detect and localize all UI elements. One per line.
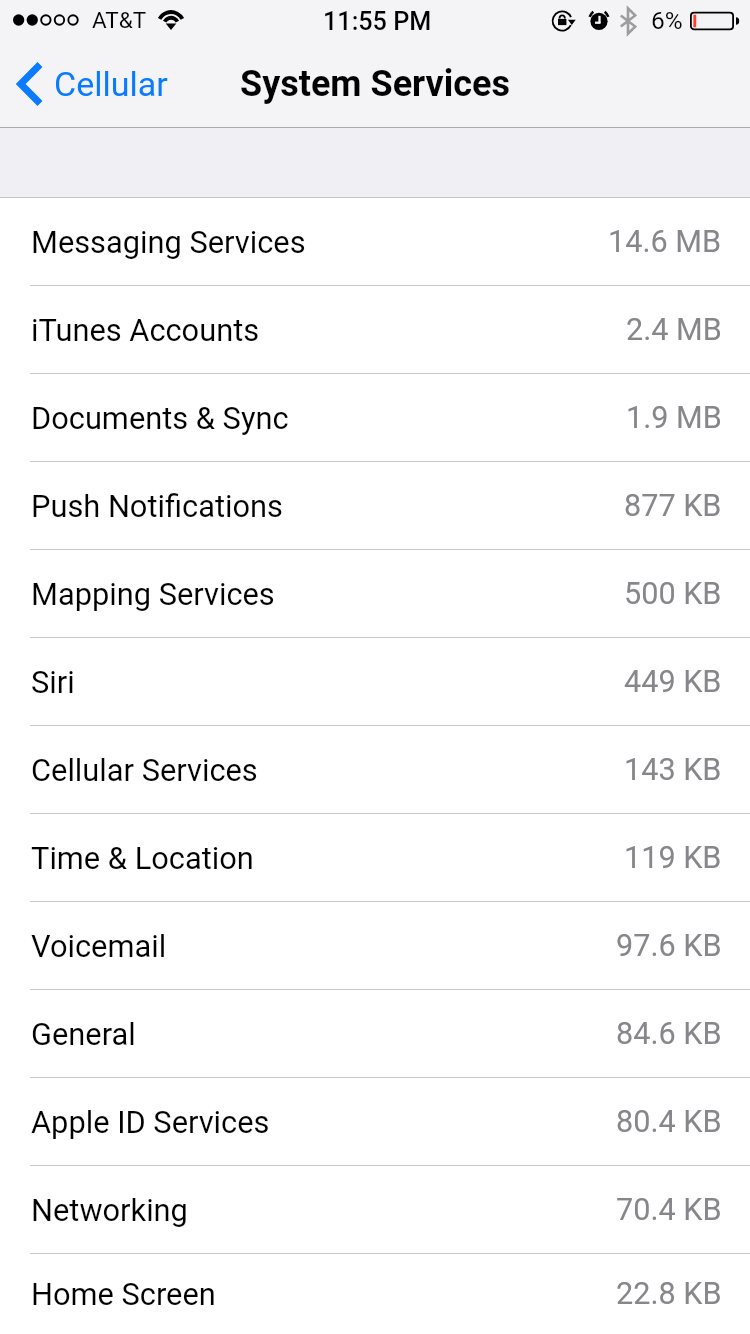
other: Battery 6 percent bbox=[690, 11, 739, 31]
staticText: 14.6 MB bbox=[608, 224, 722, 260]
button[interactable]: Back to Cellular bbox=[0, 52, 178, 116]
staticText: Mapping Services bbox=[31, 576, 275, 612]
staticText: System Services bbox=[240, 63, 511, 105]
staticText: Voicemail bbox=[31, 928, 167, 964]
staticText: Messaging Services bbox=[31, 224, 306, 260]
other: Bluetooth bbox=[620, 8, 636, 34]
staticText: 80.4 KB bbox=[616, 1104, 722, 1140]
staticText: 449 KB bbox=[624, 664, 722, 700]
button[interactable]: Cellular Services bbox=[0, 726, 750, 813]
staticText: Apple ID Services bbox=[31, 1104, 270, 1140]
staticText: 500 KB bbox=[624, 576, 722, 612]
staticText: 1.9 MB bbox=[626, 400, 722, 436]
staticText: Cellular bbox=[54, 64, 168, 104]
button[interactable]: Networking bbox=[0, 1166, 750, 1253]
staticText: Networking bbox=[31, 1192, 188, 1228]
button[interactable]: Mapping Services bbox=[0, 550, 750, 637]
staticText: General bbox=[31, 1016, 136, 1052]
staticText: 2.4 MB bbox=[626, 312, 722, 348]
other: Alarm bbox=[589, 10, 609, 31]
other: Wi-Fi bbox=[158, 10, 184, 30]
staticText: Siri bbox=[31, 664, 75, 700]
button[interactable]: Siri bbox=[0, 638, 750, 725]
other: Cellular signal bbox=[13, 12, 81, 28]
staticText: 143 KB bbox=[624, 752, 722, 788]
staticText: 119 KB bbox=[624, 840, 722, 876]
staticText: iTunes Accounts bbox=[31, 312, 260, 348]
other: Rotation lock bbox=[552, 10, 576, 32]
button[interactable]: Home Screen bbox=[0, 1254, 750, 1334]
staticText: 84.6 KB bbox=[616, 1016, 722, 1052]
staticText: Home Screen bbox=[31, 1276, 216, 1312]
staticText: 11:55 PM bbox=[323, 7, 432, 37]
button[interactable]: Apple ID Services bbox=[0, 1078, 750, 1165]
staticText: 22.8 KB bbox=[616, 1276, 722, 1312]
button[interactable]: iTunes Accounts bbox=[0, 286, 750, 373]
staticText: Documents & Sync bbox=[31, 400, 289, 436]
staticText: Push Notifications bbox=[31, 488, 283, 524]
button[interactable]: General bbox=[0, 990, 750, 1077]
button[interactable]: Time & Location bbox=[0, 814, 750, 901]
staticText: 70.4 KB bbox=[616, 1192, 722, 1228]
button[interactable]: Voicemail bbox=[0, 902, 750, 989]
staticText: Time & Location bbox=[31, 840, 254, 876]
button[interactable]: Documents & Sync bbox=[0, 374, 750, 461]
staticText: 877 KB bbox=[624, 488, 722, 524]
staticText: 97.6 KB bbox=[616, 928, 722, 964]
button[interactable]: Messaging Services bbox=[0, 198, 750, 285]
button[interactable]: Push Notifications bbox=[0, 462, 750, 549]
staticText: 6% bbox=[651, 6, 683, 35]
staticText: AT&T bbox=[92, 7, 147, 33]
staticText: Cellular Services bbox=[31, 752, 258, 788]
